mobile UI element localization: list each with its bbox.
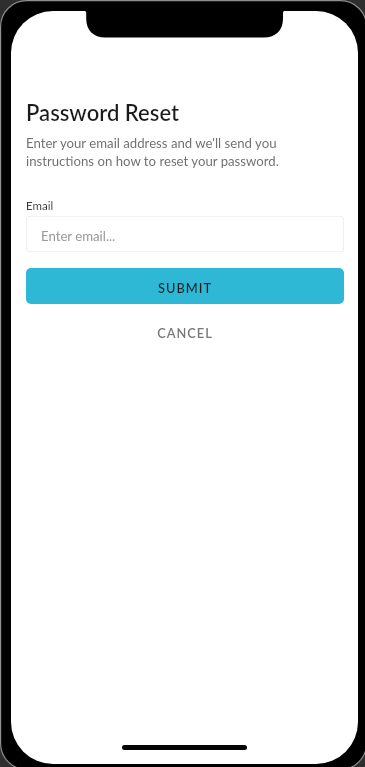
staticText: Enter your email address and we'll send …	[26, 135, 344, 169]
staticText: Email	[26, 199, 54, 213]
button[interactable]: Enter email...	[26, 216, 344, 252]
staticText: SUBMIT	[158, 280, 213, 295]
button[interactable]: SUBMIT	[26, 268, 344, 304]
staticText: Enter email...	[41, 228, 116, 244]
staticText: CANCEL	[157, 325, 213, 340]
staticText: Password Reset	[26, 99, 180, 125]
button[interactable]: CANCEL	[26, 318, 344, 346]
